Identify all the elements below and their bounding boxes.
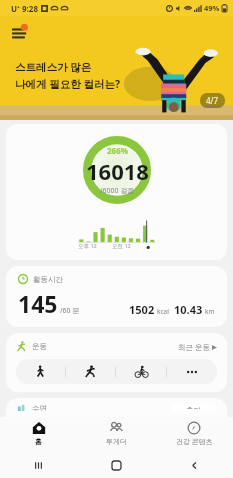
staticText: 오후 12 bbox=[78, 242, 97, 250]
button[interactable]: 266% bbox=[6, 124, 227, 260]
staticText: /60 분 bbox=[60, 306, 80, 316]
staticText: 나에게 필요한 컬러는? bbox=[15, 77, 120, 91]
button[interactable]: Menu bbox=[9, 22, 31, 44]
button[interactable]: 건강 콘텐츠 bbox=[155, 417, 233, 452]
staticText: 활동시간 bbox=[33, 275, 63, 284]
button[interactable]: 활동시간 bbox=[6, 266, 227, 327]
staticText: 266% bbox=[107, 145, 128, 156]
staticText: /6000 걸음 bbox=[100, 186, 135, 196]
staticText: 1502 bbox=[129, 302, 155, 317]
button[interactable]: Cycling bbox=[116, 359, 166, 384]
button[interactable]: 수면 bbox=[6, 398, 227, 417]
staticText: 홈 bbox=[35, 437, 42, 446]
staticText: U⁺ 9:28 bbox=[11, 3, 38, 14]
staticText: 운동 bbox=[32, 342, 47, 351]
button[interactable]: Running bbox=[66, 359, 115, 384]
button[interactable]: Back bbox=[155, 452, 233, 478]
button[interactable]: More exercises bbox=[167, 359, 217, 384]
staticText: 49% bbox=[204, 3, 220, 13]
staticText: 최근 운동 bbox=[178, 342, 210, 352]
staticText: 추가 bbox=[186, 406, 201, 409]
button[interactable]: Menu bbox=[0, 16, 233, 120]
staticText: kcal bbox=[157, 307, 169, 316]
staticText: 4/7 bbox=[206, 95, 219, 106]
button[interactable]: Recents bbox=[0, 452, 77, 478]
staticText: 145 bbox=[18, 288, 58, 319]
staticText: 투게더 bbox=[106, 437, 127, 446]
button[interactable]: 투게더 bbox=[77, 417, 155, 452]
button[interactable]: 최근 운동 bbox=[178, 342, 217, 352]
staticText: 오전 12 bbox=[112, 242, 131, 250]
button[interactable]: Home bbox=[77, 452, 155, 478]
staticText: 수면 bbox=[32, 404, 47, 411]
button[interactable]: 운동 bbox=[6, 333, 227, 392]
staticText: 건강 콘텐츠 bbox=[176, 437, 213, 447]
staticText: 16018 bbox=[86, 156, 149, 186]
button[interactable]: 홈 bbox=[0, 417, 77, 452]
button[interactable]: Walking bbox=[16, 359, 65, 384]
staticText: km bbox=[205, 307, 215, 316]
staticText: 10.43 bbox=[174, 302, 203, 317]
staticText: 스트레스가 많은 bbox=[15, 60, 92, 74]
